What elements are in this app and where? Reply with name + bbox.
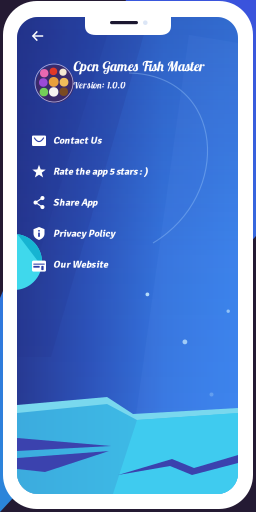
staticText: Contact Us: [53, 134, 101, 147]
button[interactable]: Contact Us: [17, 125, 238, 156]
staticText: Version: 1.0.0: [73, 79, 126, 91]
staticText: Our Website: [53, 258, 108, 271]
staticText: Privacy Policy: [53, 227, 115, 240]
staticText: Rate the app 5 stars : ): [53, 165, 148, 178]
button[interactable]: Rate the app 5 stars : ): [17, 156, 238, 187]
staticText: Share App: [53, 196, 97, 209]
button[interactable]: Share App: [17, 187, 238, 218]
button[interactable]: Back: [25, 24, 51, 48]
button[interactable]: Privacy Policy: [17, 218, 238, 249]
button[interactable]: Our Website: [17, 249, 238, 280]
staticText: Cpcn Games Fish Master: [73, 57, 204, 75]
